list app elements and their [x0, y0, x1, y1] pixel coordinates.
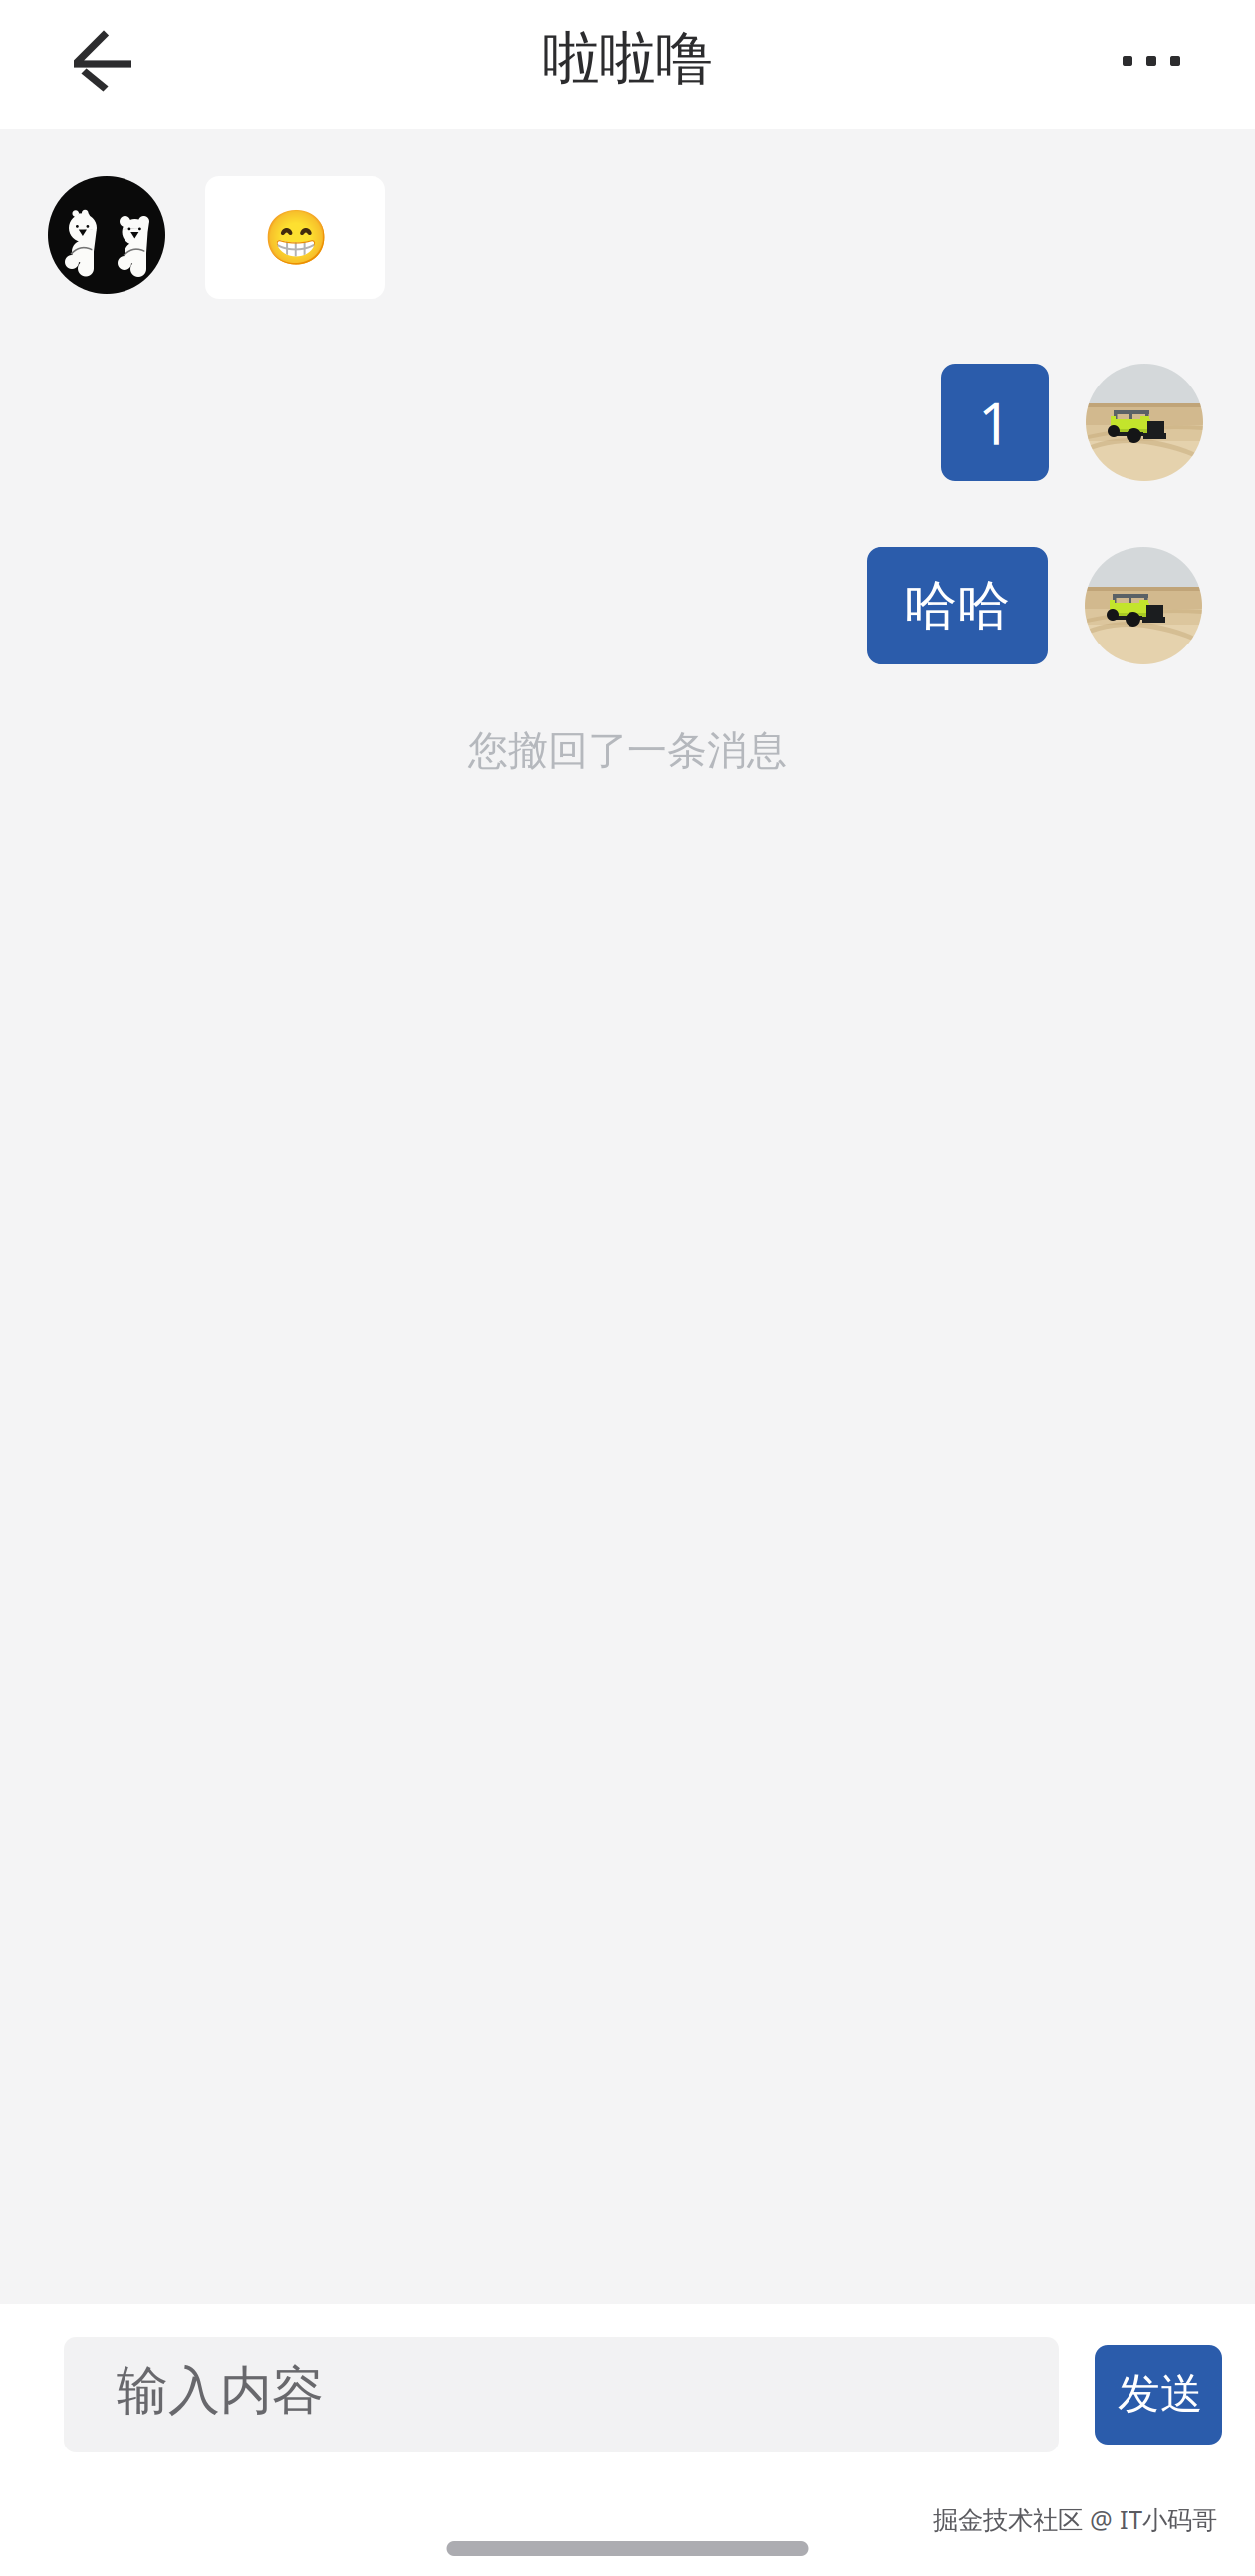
staticText: 😁: [262, 207, 328, 268]
button[interactable]: 头像: [48, 176, 165, 294]
button[interactable]: 发送: [1095, 2345, 1222, 2445]
staticText: 发送: [1118, 2368, 1203, 2420]
button[interactable]: 😁: [205, 176, 385, 299]
button[interactable]: 我的头像: [1085, 547, 1202, 664]
staticText: 啦啦噜: [542, 24, 713, 94]
button[interactable]: 更多: [1048, 0, 1255, 129]
staticText: 输入内容: [117, 2359, 324, 2423]
staticText: 哈哈: [904, 573, 1010, 638]
staticText: 掘金技术社区 @ IT小码哥: [933, 2503, 1217, 2536]
button[interactable]: 输入内容: [64, 2337, 1059, 2452]
button[interactable]: 我的头像: [1086, 364, 1203, 481]
button[interactable]: 1: [941, 364, 1049, 481]
staticText: 1: [978, 384, 1012, 461]
button[interactable]: 返回: [0, 0, 207, 129]
staticText: 您撤回了一条消息: [468, 726, 787, 775]
button[interactable]: 哈哈: [867, 547, 1048, 664]
